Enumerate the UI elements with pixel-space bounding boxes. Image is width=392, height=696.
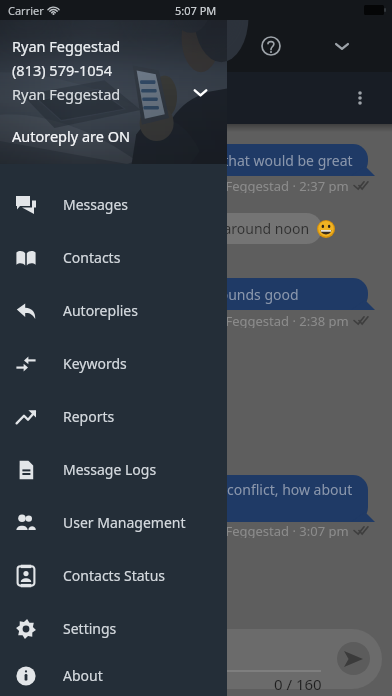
- staticText: Yeah that would be great: [188, 151, 353, 170]
- staticText: 5:07 PM: [175, 3, 217, 18]
- staticText: Ryan Feggestad · 3:07 pm: [192, 522, 349, 538]
- staticText: Message Logs: [63, 460, 157, 479]
- button[interactable]: Settings: [0, 602, 227, 655]
- button[interactable]: User Management: [0, 496, 227, 549]
- staticText: Ryan Feggestad · 2:38 pm: [192, 312, 349, 328]
- staticText: Autoreplies: [63, 301, 138, 320]
- button[interactable]: Keywords: [0, 337, 227, 390]
- staticText: Settings: [63, 619, 117, 638]
- button[interactable]: More options: [345, 83, 375, 113]
- staticText: (813) 579-1054: [12, 60, 113, 80]
- button[interactable]: Help: [256, 31, 286, 61]
- button[interactable]: Contacts: [0, 231, 227, 284]
- button[interactable]: Collapse: [327, 31, 357, 61]
- staticText: How about around noon: [148, 219, 310, 238]
- staticText: Autoreply are ON: [12, 126, 131, 146]
- staticText: Ryan Feggestad · 2:37 pm: [192, 177, 349, 193]
- button[interactable]: Send: [337, 642, 370, 675]
- staticText: Reports: [63, 407, 115, 426]
- staticText: 0 / 160: [274, 674, 322, 694]
- button[interactable]: Message Logs: [0, 443, 227, 496]
- staticText: Contacts: [63, 248, 121, 267]
- button[interactable]: Messages: [0, 178, 227, 231]
- staticText: Messages: [63, 195, 129, 214]
- staticText: Sorry, I have a scheduling conflict, how…: [55, 480, 353, 499]
- staticText: User Management: [63, 513, 186, 532]
- button[interactable]: Switch account: [186, 78, 214, 106]
- staticText: Ryan Feggestad: [12, 84, 121, 104]
- button[interactable]: [8, 629, 382, 689]
- button[interactable]: Contacts Status: [0, 549, 227, 602]
- staticText: Ryan Feggestad: [12, 36, 121, 56]
- button[interactable]: About: [0, 655, 227, 696]
- staticText: Sounds good: [212, 285, 299, 304]
- staticText: Contacts Status: [63, 566, 166, 585]
- button[interactable]: Autoreplies: [0, 284, 227, 337]
- staticText: About: [63, 666, 103, 685]
- staticText: Keywords: [63, 354, 127, 373]
- staticText: Carrier: [8, 3, 44, 18]
- button[interactable]: Reports: [0, 390, 227, 443]
